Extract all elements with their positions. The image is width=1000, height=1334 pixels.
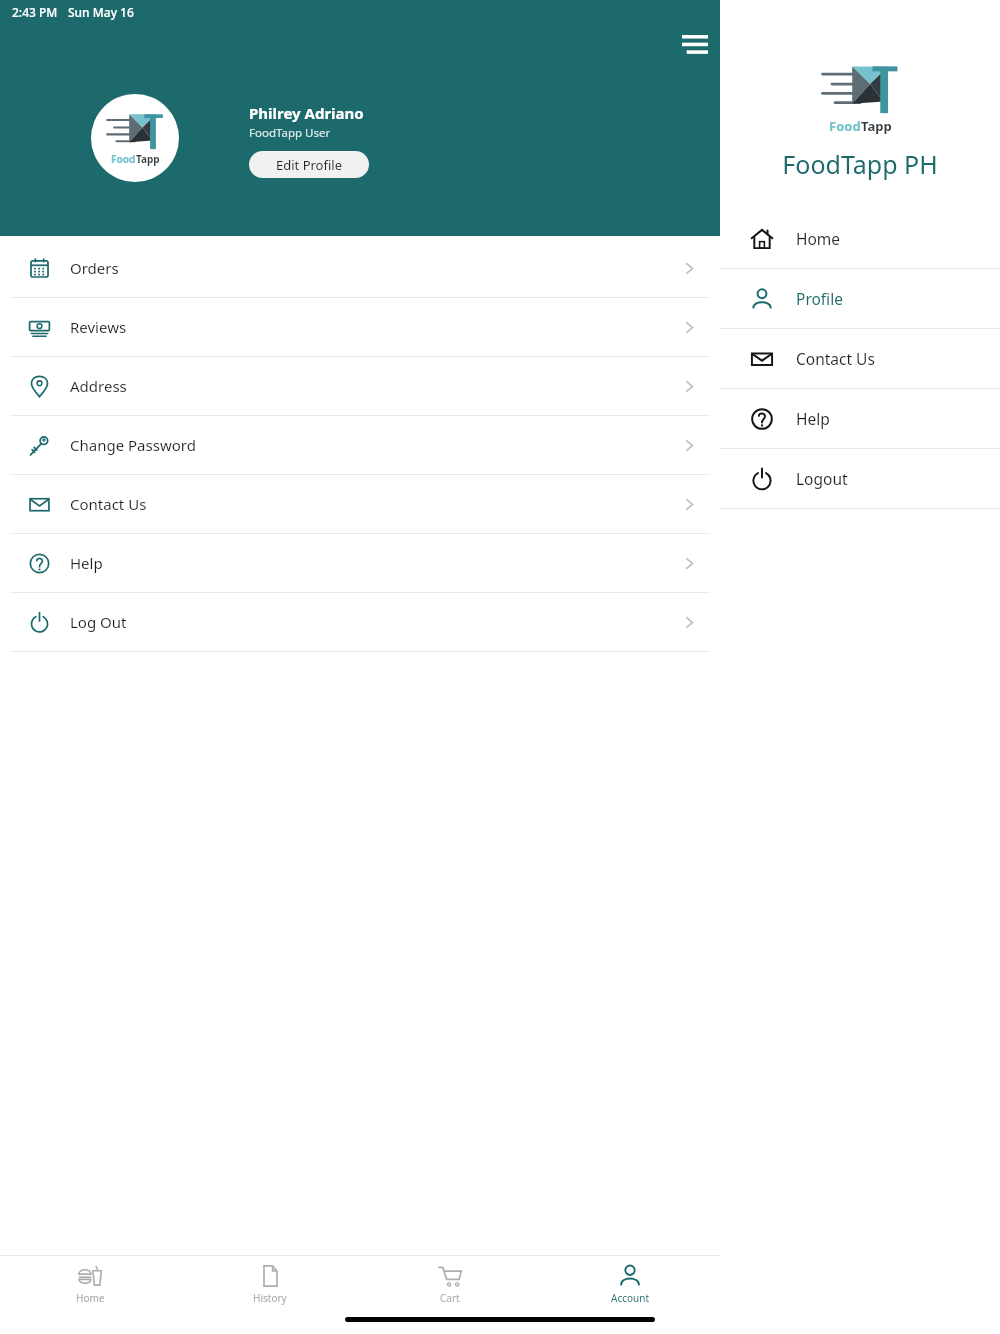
staticText: Tapp [136, 152, 160, 166]
button[interactable]: Logout [720, 449, 1000, 508]
button[interactable]: Account [540, 1256, 720, 1312]
button[interactable]: Home [720, 209, 1000, 268]
staticText: Contact Us [796, 348, 875, 369]
staticText: Account [611, 1291, 650, 1305]
button[interactable]: Contact Us [720, 329, 1000, 388]
button[interactable]: Log Out [0, 593, 720, 651]
staticText: Profile [796, 288, 843, 309]
staticText: FoodTapp PH [782, 147, 938, 181]
button[interactable]: Help [720, 389, 1000, 448]
staticText: Tapp [861, 117, 892, 135]
staticText: Edit Profile [276, 156, 343, 174]
staticText: Sun May 16 [68, 4, 134, 20]
button[interactable]: Change Password [0, 416, 720, 474]
staticText: Help [70, 553, 103, 573]
staticText: Food [829, 117, 861, 135]
button[interactable]: Reviews [0, 298, 720, 356]
staticText: Reviews [70, 317, 127, 337]
staticText: History [253, 1291, 287, 1305]
staticText: Logout [796, 468, 848, 489]
staticText: Food [111, 152, 136, 166]
staticText: Philrey Adriano [249, 103, 364, 123]
button[interactable]: Open navigation menu [673, 21, 717, 65]
staticText: Address [70, 376, 127, 396]
staticText: Help [796, 408, 830, 429]
staticText: Home [796, 228, 841, 249]
button[interactable]: Home [0, 1256, 180, 1312]
button[interactable]: Help [0, 534, 720, 592]
button[interactable]: History [180, 1256, 360, 1312]
button[interactable]: Edit Profile [249, 151, 369, 178]
staticText: Change Password [70, 435, 196, 455]
staticText: Contact Us [70, 494, 147, 514]
staticText: Orders [70, 258, 119, 278]
staticText: FoodTapp User [249, 125, 331, 141]
button[interactable]: Orders [0, 239, 720, 297]
button[interactable]: Cart [360, 1256, 540, 1312]
staticText: 2:43 PM [12, 4, 58, 20]
staticText: Log Out [70, 612, 127, 632]
button[interactable]: Contact Us [0, 475, 720, 533]
button[interactable]: Profile [720, 269, 1000, 328]
button[interactable]: Address [0, 357, 720, 415]
staticText: Home [76, 1291, 105, 1305]
staticText: Cart [440, 1291, 460, 1305]
